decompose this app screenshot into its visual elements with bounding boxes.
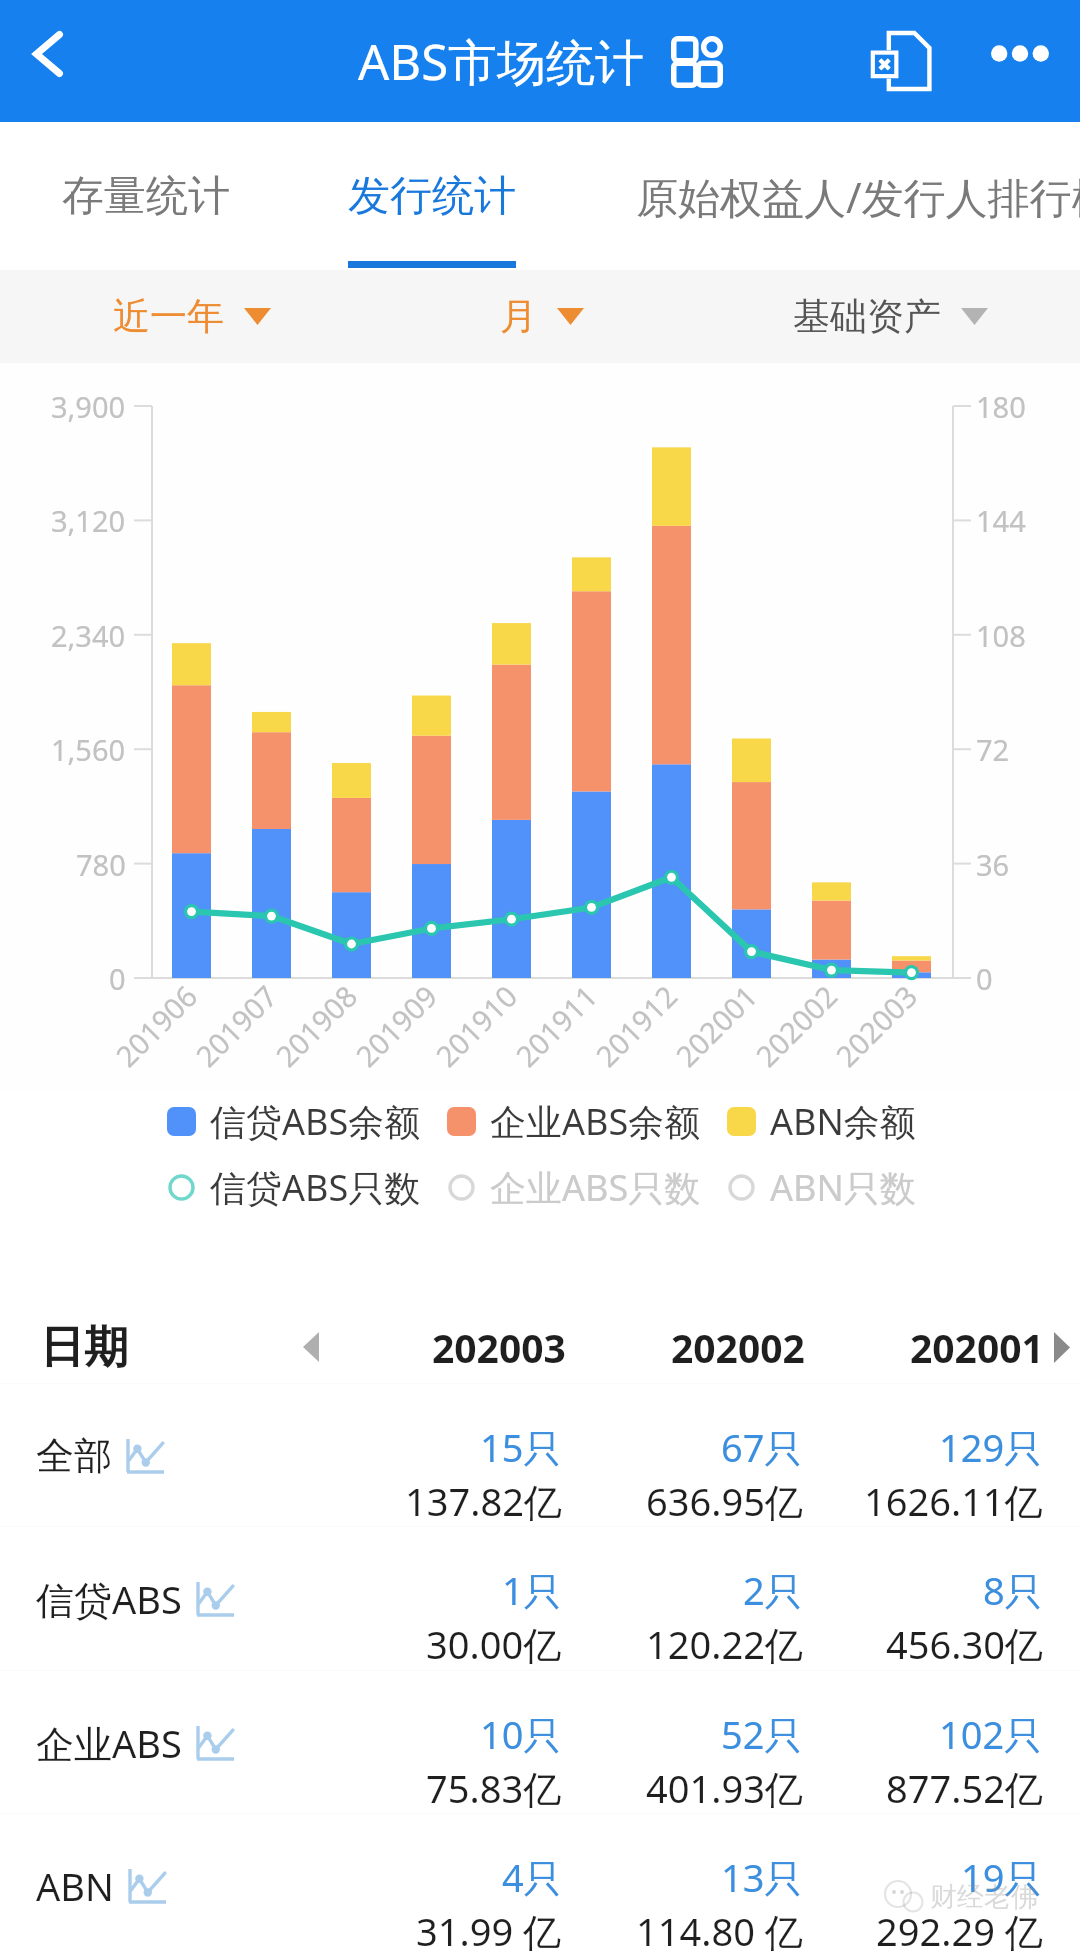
staticText: 8只 xyxy=(983,1564,1043,1616)
staticText: 信贷ABS xyxy=(36,1573,182,1625)
button[interactable]: 信贷ABS只数 xyxy=(167,1163,421,1212)
staticText: 202002 xyxy=(747,976,845,1075)
button[interactable]: 原始权益人/发行人排行榜 xyxy=(636,122,1080,270)
button[interactable]: Back xyxy=(0,0,112,122)
button[interactable]: 全部 xyxy=(36,1416,164,1496)
staticText: 636.95亿 xyxy=(646,1475,803,1527)
staticText: 114.80 亿 xyxy=(636,1905,803,1957)
button[interactable]: 企业ABS xyxy=(36,1703,234,1783)
button[interactable]: 信贷ABS余额 xyxy=(167,1097,421,1146)
staticText: 108 xyxy=(976,616,1026,655)
staticText: 180 xyxy=(976,387,1026,426)
staticText: 企业ABS余额 xyxy=(490,1097,701,1146)
staticText: ABN只数 xyxy=(770,1163,916,1212)
staticText: 全部 xyxy=(36,1432,112,1480)
button[interactable]: Export to Excel xyxy=(853,0,949,122)
staticText: 月 xyxy=(500,293,537,340)
staticText: 102只 xyxy=(939,1708,1043,1760)
button[interactable] xyxy=(0,1813,1080,1956)
staticText: 780 xyxy=(76,845,126,884)
button[interactable]: 基础资产 xyxy=(710,270,1070,363)
staticText: 201912 xyxy=(587,976,685,1075)
staticText: 72 xyxy=(976,730,1010,769)
staticText: 201906 xyxy=(107,976,205,1075)
staticText: 日期 xyxy=(40,1320,128,1375)
button[interactable]: Trend chart for 企业ABS xyxy=(196,1725,234,1761)
button[interactable]: Trend chart for ABN xyxy=(128,1868,166,1904)
button[interactable]: Previous period xyxy=(287,1307,334,1387)
staticText: ABN余额 xyxy=(770,1097,916,1146)
staticText: 0 xyxy=(109,959,126,998)
staticText: 基础资产 xyxy=(793,293,941,340)
staticText: 292.29 亿 xyxy=(876,1905,1043,1957)
staticText: 137.82亿 xyxy=(405,1475,562,1527)
staticText: 202001 xyxy=(910,1321,1044,1374)
staticText: 2,340 xyxy=(51,616,126,655)
button[interactable]: ABN余额 xyxy=(727,1097,916,1146)
staticText: 1,560 xyxy=(51,730,126,769)
staticText: 456.30亿 xyxy=(886,1618,1043,1670)
staticText: 10只 xyxy=(480,1708,562,1760)
staticText: ABS市场统计 xyxy=(358,28,645,95)
staticText: 144 xyxy=(976,501,1026,540)
staticText: 2只 xyxy=(743,1564,803,1616)
button[interactable]: More options xyxy=(977,0,1062,122)
staticText: 202003 xyxy=(432,1321,566,1374)
staticText: 信贷ABS只数 xyxy=(210,1163,421,1212)
staticText: 31.99 亿 xyxy=(416,1905,562,1957)
staticText: 企业ABS只数 xyxy=(490,1163,701,1212)
staticText: 201907 xyxy=(187,976,285,1075)
staticText: 877.52亿 xyxy=(886,1762,1043,1814)
button[interactable]: 发行统计 xyxy=(342,122,522,270)
staticText: 52只 xyxy=(721,1708,803,1760)
staticText: 企业ABS xyxy=(36,1717,182,1769)
staticText: 201911 xyxy=(507,976,605,1075)
button[interactable] xyxy=(0,1526,1080,1669)
staticText: 近一年 xyxy=(113,293,224,340)
staticText: 30.00亿 xyxy=(426,1618,562,1670)
staticText: ABN xyxy=(36,1860,114,1912)
staticText: 36 xyxy=(976,845,1010,884)
button[interactable]: 信贷ABS xyxy=(36,1559,234,1639)
staticText: 0 xyxy=(976,959,993,998)
button[interactable] xyxy=(0,1670,1080,1813)
button[interactable]: 存量统计 xyxy=(56,122,236,270)
staticText: 401.93亿 xyxy=(646,1762,803,1814)
staticText: 15只 xyxy=(480,1421,562,1473)
staticText: 存量统计 xyxy=(62,170,230,223)
staticText: 3,900 xyxy=(51,387,126,426)
staticText: 202001 xyxy=(667,976,765,1075)
staticText: 202002 xyxy=(671,1321,805,1374)
staticText: 1626.11亿 xyxy=(864,1475,1043,1527)
staticText: 13只 xyxy=(721,1851,803,1903)
staticText: 67只 xyxy=(721,1421,803,1473)
button[interactable] xyxy=(0,1383,1080,1526)
button[interactable]: Grid view xyxy=(671,36,723,88)
staticText: 1只 xyxy=(502,1564,562,1616)
button[interactable]: 企业ABS只数 xyxy=(447,1163,701,1212)
staticText: 75.83亿 xyxy=(426,1762,562,1814)
button[interactable]: Trend chart for 全部 xyxy=(126,1438,164,1474)
button[interactable]: Trend chart for 信贷ABS xyxy=(196,1581,234,1617)
staticText: 19只 xyxy=(961,1851,1043,1903)
staticText: 原始权益人/发行人排行榜 xyxy=(636,168,1080,225)
staticText: 202003 xyxy=(827,976,925,1075)
staticText: 发行统计 xyxy=(348,170,516,223)
staticText: 201908 xyxy=(267,976,365,1075)
button[interactable]: ABN只数 xyxy=(727,1163,916,1212)
staticText: 财经老佛 xyxy=(930,1880,1038,1914)
staticText: 201909 xyxy=(347,976,445,1075)
button[interactable]: 企业ABS余额 xyxy=(447,1097,701,1146)
button[interactable]: ABN xyxy=(36,1846,166,1926)
button[interactable]: 月 xyxy=(362,270,722,363)
staticText: 4只 xyxy=(502,1851,562,1903)
staticText: 120.22亿 xyxy=(646,1618,803,1670)
button[interactable]: Next period xyxy=(1043,1307,1080,1387)
staticText: 3,120 xyxy=(51,501,126,540)
staticText: 129只 xyxy=(939,1421,1043,1473)
staticText: 信贷ABS余额 xyxy=(210,1097,421,1146)
button[interactable]: 近一年 xyxy=(12,270,372,363)
staticText: 201910 xyxy=(427,976,525,1075)
